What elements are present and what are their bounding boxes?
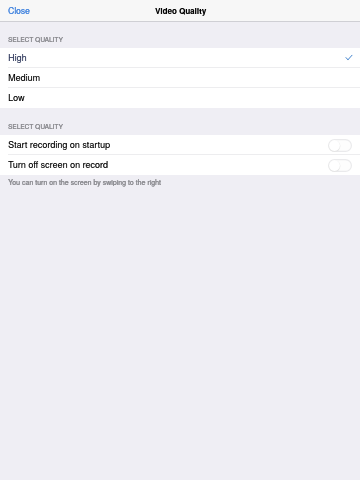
- button[interactable]: Turn off screen on record: [328, 159, 352, 172]
- staticText: Video Quality: [155, 5, 207, 16]
- staticText: SELECT QUALITY: [8, 122, 63, 131]
- staticText: You can turn on the screen by swiping to…: [8, 177, 161, 187]
- staticText: Video Quality: [155, 5, 207, 16]
- staticText: Turn off screen on record: [8, 158, 108, 171]
- staticText: You can turn on the screen by swiping to…: [8, 177, 161, 187]
- other: Selected: [346, 55, 352, 60]
- staticText: Low: [8, 91, 25, 104]
- staticText: SELECT QUALITY: [8, 35, 63, 44]
- button[interactable]: High: [0, 48, 360, 68]
- staticText: Close: [8, 4, 30, 16]
- staticText: SELECT QUALITY: [8, 35, 63, 44]
- staticText: SELECT QUALITY: [8, 122, 63, 131]
- staticText: Medium: [8, 71, 41, 84]
- button[interactable]: Medium: [0, 68, 360, 88]
- staticText: Turn off screen on record: [8, 158, 108, 171]
- staticText: Start recording on startup: [8, 138, 110, 151]
- staticText: High: [8, 51, 27, 64]
- button[interactable]: Start recording on startup: [328, 139, 352, 152]
- staticText: Low: [8, 91, 25, 104]
- staticText: High: [8, 51, 27, 64]
- staticText: Medium: [8, 71, 41, 84]
- staticText: Start recording on startup: [8, 138, 110, 151]
- staticText: Close: [8, 4, 30, 16]
- button[interactable]: Close: [0, 1, 38, 21]
- button[interactable]: Low: [0, 88, 360, 108]
